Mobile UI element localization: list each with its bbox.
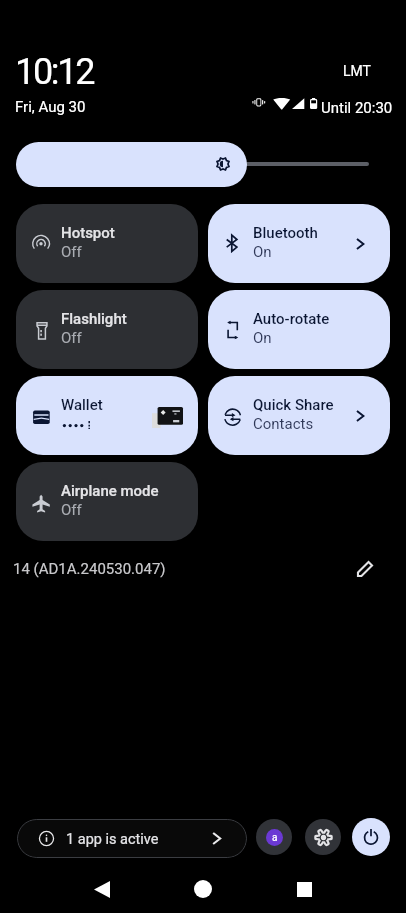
staticText: Flashlight [61, 310, 127, 328]
staticText: 14 (AD1A.240530.047) [13, 560, 166, 578]
button[interactable]: Quick Share [208, 376, 390, 455]
button[interactable]: User account [256, 819, 292, 855]
button[interactable]: Hotspot [16, 204, 198, 283]
staticText: On [253, 243, 272, 261]
button[interactable]: Wallet [16, 376, 198, 455]
button[interactable]: Edit [352, 555, 380, 583]
staticText: Bluetooth [253, 224, 318, 242]
staticText: Hotspot [61, 224, 115, 242]
staticText: 10:12 [15, 51, 94, 93]
staticText: Contacts [253, 415, 314, 433]
staticText: Quick Share [253, 396, 334, 414]
button[interactable]: Brightness [16, 142, 247, 187]
staticText: 1 app is active [66, 831, 159, 848]
button[interactable]: Flashlight [16, 290, 198, 369]
staticText: Airplane mode [61, 482, 159, 500]
button[interactable]: Back [94, 881, 110, 898]
staticText: Off [61, 501, 82, 519]
staticText: Off [61, 329, 82, 347]
button[interactable]: Settings [305, 819, 341, 855]
button[interactable]: Bluetooth [208, 204, 390, 283]
staticText: LMT [343, 63, 371, 79]
staticText: Fri, Aug 30 [15, 98, 86, 116]
staticText: Wallet [61, 396, 103, 414]
staticText: Until 20:30 [321, 99, 393, 117]
button[interactable]: 1 app is active [17, 819, 247, 858]
staticText: a [272, 832, 278, 844]
button[interactable]: Airplane mode [16, 462, 198, 541]
button[interactable]: Power [352, 818, 390, 856]
button[interactable]: Home [194, 880, 212, 898]
button[interactable]: Auto-rotate [208, 290, 390, 369]
staticText: Auto-rotate [253, 310, 330, 328]
staticText: On [253, 329, 272, 347]
staticText: Off [61, 243, 82, 261]
